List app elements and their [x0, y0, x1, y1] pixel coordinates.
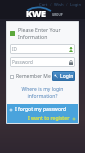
staticText: / [66, 2, 68, 8]
staticText: Login [60, 73, 74, 80]
button[interactable]: Login [52, 71, 75, 81]
button[interactable]: I want to register [28, 115, 76, 122]
staticText: Cart [39, 2, 48, 8]
staticText: GROUP [52, 13, 63, 17]
staticText: I want to register [28, 115, 70, 122]
staticText: Please Enter Your Information [18, 26, 75, 40]
staticText: Wish [54, 2, 64, 8]
staticText: I forgot my password [15, 106, 67, 113]
staticText: ID [12, 46, 17, 52]
staticText: Password [12, 59, 33, 65]
button[interactable]: ID [10, 44, 75, 54]
staticText: Login [70, 2, 81, 8]
button[interactable]: Password [10, 57, 75, 67]
button[interactable]: I forgot my password [9, 106, 67, 113]
button[interactable]: Cart [38, 2, 49, 8]
staticText: Remember Me [16, 73, 51, 80]
staticText: / [50, 2, 52, 8]
button[interactable]: Where is my login information? [10, 86, 75, 100]
button[interactable]: Login [69, 2, 82, 8]
button[interactable]: Wish [53, 2, 65, 8]
button[interactable]: Remember Me [10, 73, 51, 80]
staticText: KWE [26, 7, 46, 18]
button[interactable]: KWE home [26, 7, 63, 18]
